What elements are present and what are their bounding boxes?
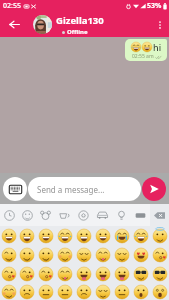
button[interactable]: Keyboard	[3, 177, 27, 201]
button[interactable]: Emoji	[150, 283, 169, 300]
button[interactable]: Emoji	[74, 226, 93, 245]
button[interactable]: Emoji	[36, 245, 55, 264]
button[interactable]: Emoji	[55, 264, 74, 283]
button[interactable]: Emoji	[74, 245, 93, 264]
button[interactable]: Recent	[0, 204, 18, 226]
button[interactable]: Emoji	[55, 245, 74, 264]
button[interactable]: Emoji	[112, 283, 131, 300]
button[interactable]: Send a message...	[28, 177, 141, 201]
button[interactable]: Emoji	[0, 226, 18, 245]
button[interactable]: Emoji	[18, 264, 36, 283]
button[interactable]: Objects	[112, 204, 131, 226]
button[interactable]: Emoji	[131, 245, 150, 264]
staticText: 02:55	[3, 1, 21, 11]
button[interactable]: Emoji	[0, 283, 18, 300]
button[interactable]: Emoji	[131, 283, 150, 300]
button[interactable]: More options	[151, 12, 169, 37]
button[interactable]: Emoji	[18, 283, 36, 300]
button[interactable]: Profile photo	[33, 15, 52, 34]
button[interactable]: Emoji	[74, 283, 93, 300]
button[interactable]: Emoji	[112, 264, 131, 283]
button[interactable]: Animals	[36, 204, 55, 226]
button[interactable]: Emoji	[150, 226, 169, 245]
staticText: Send a message...	[37, 184, 105, 195]
staticText: 02:55 am	[132, 53, 154, 60]
staticText: 53%	[147, 1, 162, 11]
staticText: Gizella130	[56, 14, 104, 27]
button[interactable]: hi	[125, 39, 167, 61]
staticText: Offline	[67, 28, 88, 36]
button[interactable]: Emoji	[93, 226, 112, 245]
button[interactable]: Back	[0, 12, 28, 37]
button[interactable]: Backspace	[150, 204, 169, 226]
button[interactable]: Emoji	[150, 245, 169, 264]
button[interactable]: Emoji	[55, 283, 74, 300]
button[interactable]: Emoji	[0, 245, 18, 264]
button[interactable]: Emoji	[131, 226, 150, 245]
button[interactable]: Emoji	[112, 245, 131, 264]
button[interactable]: Send	[142, 177, 166, 201]
button[interactable]: Symbols	[131, 204, 150, 226]
button[interactable]: Emoji	[18, 226, 36, 245]
button[interactable]: Emoji	[93, 264, 112, 283]
button[interactable]: Emoji	[55, 226, 74, 245]
button[interactable]: Emoji	[112, 226, 131, 245]
button[interactable]: Emoji	[18, 245, 36, 264]
button[interactable]: Smileys	[18, 204, 36, 226]
button[interactable]: Activities	[74, 204, 93, 226]
button[interactable]: Food	[55, 204, 74, 226]
button[interactable]: Emoji	[36, 226, 55, 245]
button[interactable]: Emoji	[131, 264, 150, 283]
button[interactable]: Emoji	[36, 283, 55, 300]
button[interactable]: Emoji	[150, 264, 169, 283]
button[interactable]: Emoji	[93, 245, 112, 264]
button[interactable]: Emoji	[36, 264, 55, 283]
button[interactable]: Emoji	[93, 283, 112, 300]
button[interactable]: Travel	[93, 204, 112, 226]
staticText: hi	[153, 41, 162, 53]
button[interactable]: Emoji	[74, 264, 93, 283]
button[interactable]: Emoji	[0, 264, 18, 283]
